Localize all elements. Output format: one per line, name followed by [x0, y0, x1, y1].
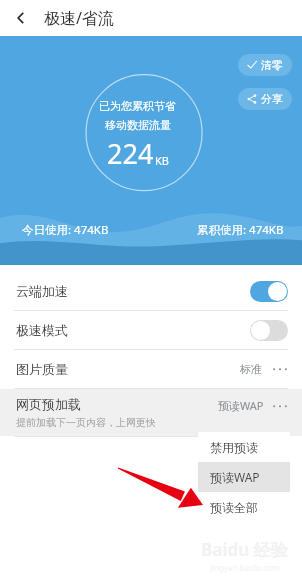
button[interactable]: Back	[6, 3, 36, 33]
staticText: 提前加载下一页内容，上网更快	[16, 416, 156, 429]
button[interactable]: Off	[250, 320, 288, 341]
staticText: KB	[155, 153, 169, 168]
staticText: 移动数据流量	[105, 118, 171, 132]
staticText: 云端加速	[16, 283, 68, 299]
button[interactable]: 预读WAP	[198, 462, 290, 492]
staticText: 图片质量	[16, 361, 68, 377]
button[interactable]: 分享	[238, 88, 292, 110]
button[interactable]: 清零	[238, 54, 292, 76]
button[interactable]: 极速模式	[0, 311, 302, 349]
staticText: 清零	[261, 58, 283, 72]
button[interactable]: 图片质量	[0, 350, 302, 388]
staticText: Baidu 经验	[201, 538, 288, 561]
staticText: 累积使用: 474KB	[197, 222, 284, 238]
button[interactable]: 预读全部	[198, 492, 290, 522]
staticText: 预读WAP	[218, 398, 264, 413]
button[interactable]: 禁用预读	[198, 432, 290, 462]
staticText: 预读全部	[210, 500, 258, 515]
button[interactable]: On	[250, 281, 288, 302]
staticText: jingyan.baidu.com	[210, 562, 280, 573]
staticText: 极速模式	[16, 322, 68, 338]
staticText: 标准	[240, 362, 262, 376]
staticText: 极速/省流	[44, 7, 114, 29]
staticText: 224	[107, 135, 154, 172]
staticText: 禁用预读	[210, 440, 258, 455]
staticText: 今日使用: 474KB	[22, 222, 109, 238]
staticText: 已为您累积节省	[99, 99, 176, 113]
button[interactable]: 网页预加载	[0, 389, 302, 436]
button[interactable]: 云端加速	[0, 272, 302, 310]
staticText: 预读WAP	[210, 469, 260, 485]
staticText: 网页预加载	[16, 396, 81, 412]
staticText: 分享	[261, 92, 283, 106]
